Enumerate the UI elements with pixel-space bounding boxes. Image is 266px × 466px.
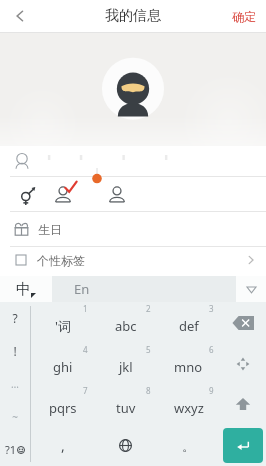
button[interactable]: ? bbox=[0, 302, 30, 334]
staticText: 个性标签 bbox=[37, 253, 85, 268]
staticText: mno bbox=[174, 358, 203, 376]
button[interactable]: 9 bbox=[157, 384, 220, 425]
staticText: tuv bbox=[116, 399, 136, 417]
staticText: 。 bbox=[182, 438, 195, 454]
button[interactable]: 1 bbox=[31, 302, 94, 343]
staticText: jkl bbox=[119, 358, 133, 376]
button[interactable]: 确定 bbox=[232, 9, 256, 24]
staticText: 5 bbox=[146, 344, 151, 355]
staticText: , bbox=[61, 436, 65, 455]
staticText: ! bbox=[13, 343, 17, 359]
button[interactable] bbox=[0, 146, 266, 176]
button[interactable]: 8 bbox=[94, 384, 157, 425]
button[interactable]: Back bbox=[0, 0, 40, 32]
button[interactable]: En bbox=[52, 276, 236, 302]
button[interactable]: 3 bbox=[157, 302, 220, 343]
staticText: 我的信息 bbox=[105, 7, 161, 25]
staticText: def bbox=[179, 317, 199, 335]
staticText: 2 bbox=[146, 303, 151, 314]
button[interactable]: ~ bbox=[0, 400, 30, 433]
button[interactable]: ! bbox=[0, 334, 30, 367]
staticText: 1 bbox=[83, 303, 88, 314]
button[interactable]: Switch language bbox=[94, 425, 157, 466]
button[interactable]: 6 bbox=[157, 343, 220, 384]
staticText: ghi bbox=[53, 358, 73, 376]
button[interactable]: Move cursor bbox=[220, 343, 266, 384]
button[interactable]: Hide keyboard bbox=[236, 276, 266, 302]
button[interactable]: 4 bbox=[31, 343, 94, 384]
button[interactable]: Shift bbox=[220, 384, 266, 425]
staticText: 9 bbox=[209, 385, 214, 396]
staticText: En bbox=[74, 280, 90, 298]
button[interactable]: , bbox=[31, 425, 94, 466]
staticText: 6 bbox=[209, 344, 214, 355]
button[interactable]: Male selected bbox=[48, 179, 78, 209]
button[interactable]: 生日 bbox=[0, 212, 266, 246]
button[interactable]: … bbox=[0, 367, 30, 400]
button[interactable]: 个性标签 bbox=[0, 247, 266, 273]
staticText: '词 bbox=[55, 317, 71, 335]
button[interactable]: Female bbox=[102, 179, 132, 209]
staticText: wxyz bbox=[174, 399, 204, 417]
staticText: pqrs bbox=[49, 399, 77, 417]
staticText: 中 bbox=[16, 280, 31, 299]
button[interactable]: ?1 bbox=[0, 433, 30, 466]
button[interactable]: Gender bbox=[14, 181, 40, 207]
staticText: ~ bbox=[12, 410, 18, 424]
staticText: 8 bbox=[146, 385, 151, 396]
button[interactable]: 5 bbox=[94, 343, 157, 384]
staticText: ? bbox=[12, 310, 18, 326]
button[interactable]: Backspace bbox=[220, 302, 266, 343]
button[interactable]: Enter bbox=[223, 428, 263, 463]
button[interactable]: 。 bbox=[157, 425, 220, 466]
staticText: 7 bbox=[83, 385, 88, 396]
staticText: abc bbox=[115, 317, 137, 335]
staticText: 3 bbox=[209, 303, 214, 314]
button[interactable]: 7 bbox=[31, 384, 94, 425]
button[interactable]: 2 bbox=[94, 302, 157, 343]
staticText: … bbox=[11, 377, 19, 391]
staticText: 确定 bbox=[232, 9, 256, 24]
button[interactable]: 中 bbox=[0, 276, 52, 302]
staticText: 4 bbox=[83, 344, 88, 355]
staticText: 生日 bbox=[38, 222, 62, 237]
staticText: ?1 bbox=[5, 442, 17, 457]
button[interactable]: Avatar bbox=[100, 57, 166, 123]
